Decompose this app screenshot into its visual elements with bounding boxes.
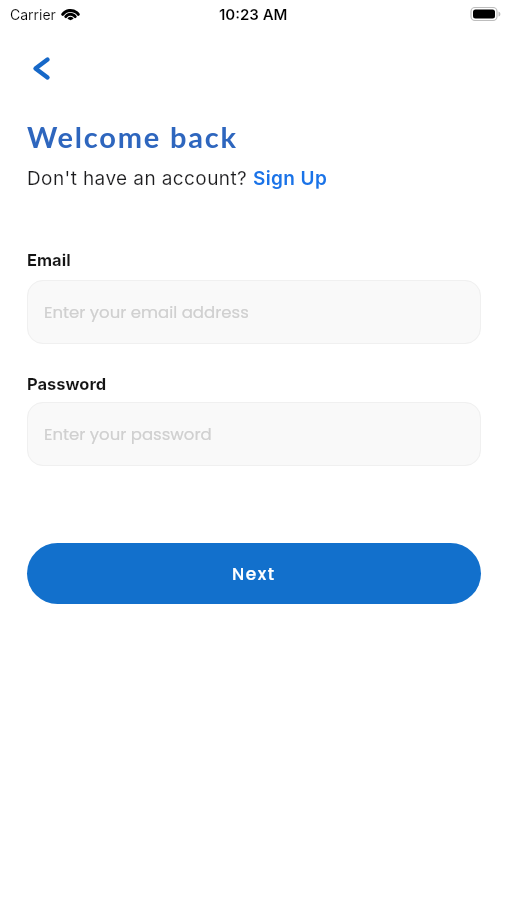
- button[interactable]: Don't have an account? Sign Up: [27, 167, 328, 190]
- button[interactable]: [19, 46, 63, 90]
- staticText: Enter your email address: [44, 301, 249, 324]
- staticText: 10:23 AM: [219, 5, 288, 23]
- button[interactable]: Enter your email address: [27, 280, 481, 344]
- staticText: Email: [27, 250, 71, 270]
- staticText: Carrier: [10, 6, 56, 23]
- staticText: Next: [232, 562, 276, 586]
- staticText: Enter your password: [44, 423, 212, 446]
- staticText: Password: [27, 374, 107, 394]
- staticText: Welcome back: [27, 119, 238, 154]
- button[interactable]: Next: [27, 543, 481, 604]
- button[interactable]: Enter your password: [27, 402, 481, 466]
